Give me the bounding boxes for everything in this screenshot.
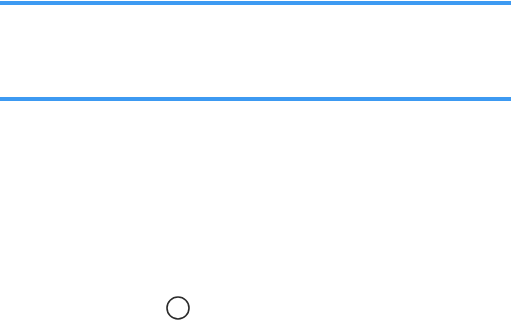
button[interactable]: Loading indicator: [164, 294, 192, 321]
